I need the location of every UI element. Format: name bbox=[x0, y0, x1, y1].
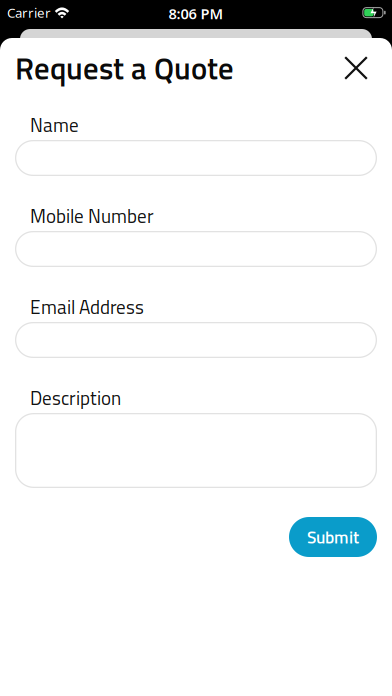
staticText: Carrier bbox=[7, 4, 51, 21]
button[interactable]: Close bbox=[344, 56, 368, 80]
button[interactable]: Submit bbox=[289, 517, 377, 557]
staticText: Name bbox=[30, 111, 79, 139]
staticText: Request a Quote bbox=[15, 45, 234, 91]
staticText: 8:06 PM bbox=[168, 4, 223, 23]
button[interactable]: Description bbox=[15, 413, 377, 488]
staticText: Email Address bbox=[30, 293, 144, 321]
button[interactable]: Mobile Number bbox=[15, 231, 377, 267]
button[interactable]: Email Address bbox=[15, 322, 377, 358]
staticText: Submit bbox=[307, 524, 359, 550]
staticText: Mobile Number bbox=[30, 202, 154, 230]
button[interactable]: Name bbox=[15, 140, 377, 176]
staticText: Description bbox=[30, 384, 121, 412]
